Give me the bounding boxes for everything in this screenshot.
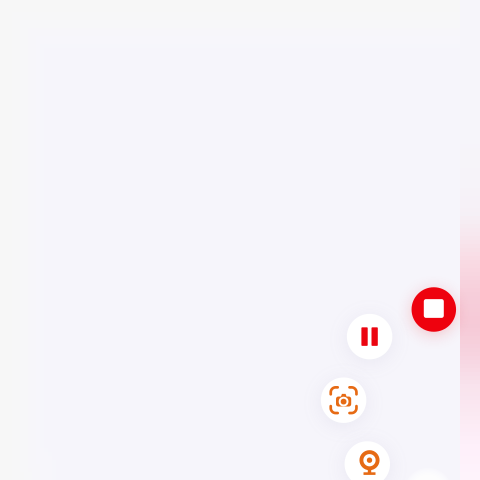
- button[interactable]: Stop recording: [412, 287, 456, 332]
- button[interactable]: Capture screenshot: [321, 377, 366, 423]
- button[interactable]: Toggle webcam: [345, 441, 390, 480]
- button[interactable]: Pause recording: [347, 314, 392, 359]
